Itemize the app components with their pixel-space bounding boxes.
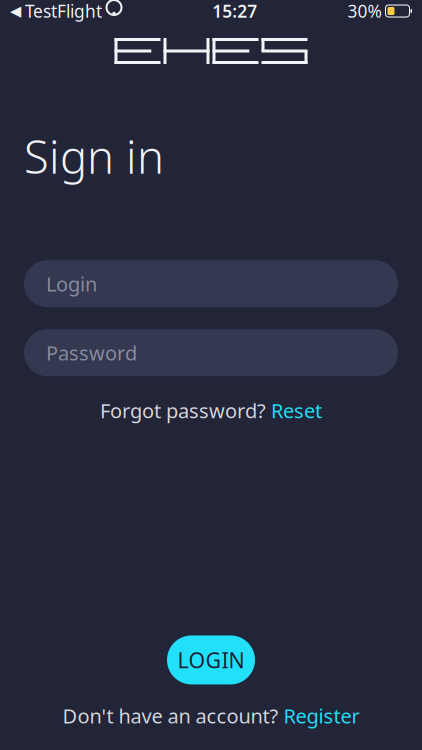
staticText: Login — [46, 270, 97, 297]
staticText: ◀ — [10, 3, 21, 19]
staticText: Register — [283, 702, 359, 729]
button[interactable]: Password — [24, 329, 398, 376]
staticText: LOGIN — [177, 646, 244, 674]
staticText: Forgot password? — [100, 397, 266, 424]
button[interactable]: Forgot password? — [92, 393, 330, 428]
staticText: 30% — [347, 0, 381, 22]
staticText: Don't have an account? — [62, 702, 278, 729]
staticText: Reset — [271, 397, 322, 424]
button[interactable]: Login — [24, 260, 398, 307]
staticText: Sign in — [24, 126, 164, 186]
button[interactable]: Don't have an account? — [54, 698, 367, 733]
button[interactable]: LOGIN — [167, 635, 255, 684]
staticText: TestFlight — [25, 0, 102, 22]
staticText: Password — [46, 339, 137, 366]
staticText: 15:27 — [212, 0, 257, 22]
